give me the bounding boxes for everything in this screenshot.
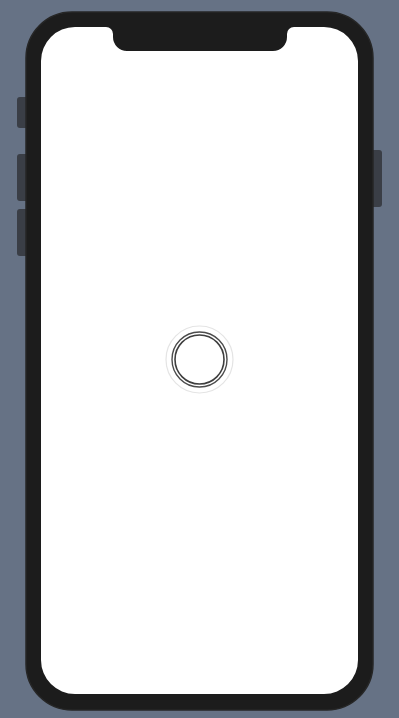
button[interactable]: Loading: [166, 326, 233, 393]
